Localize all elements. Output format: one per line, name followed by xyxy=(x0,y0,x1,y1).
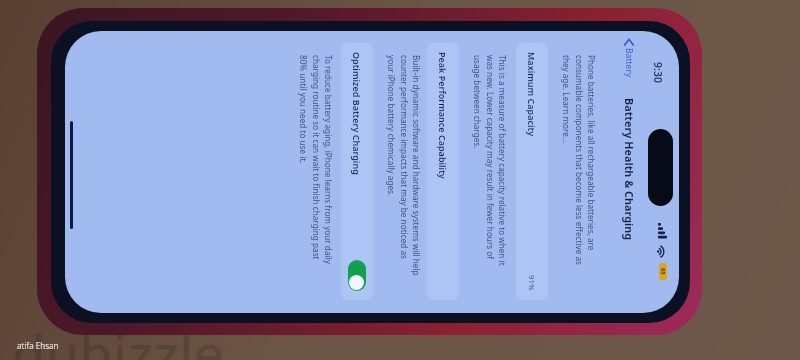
staticText: This is a measure of battery capacity re… xyxy=(472,55,508,277)
staticText: 91% xyxy=(526,275,537,291)
button[interactable]: Maximum Capacity xyxy=(516,43,548,300)
staticText: Optimized Battery Charging xyxy=(351,52,363,175)
button[interactable]: Peak Performance Capability xyxy=(427,43,459,300)
staticText: Battery xyxy=(623,48,635,78)
staticText: Peak Performance Capability xyxy=(437,52,449,179)
staticText: dubizzle xyxy=(12,316,225,360)
staticText: Battery Health & Charging xyxy=(622,98,637,241)
button[interactable]: Optimized Battery Charging xyxy=(341,43,373,300)
staticText: Maximum Capacity xyxy=(526,52,538,137)
button[interactable]: Optimized Battery Charging xyxy=(348,260,366,291)
button[interactable]: Back xyxy=(622,37,636,79)
staticText: Phone batteries, like all rechargeable b… xyxy=(561,55,597,277)
staticText: Built-in dynamic software and hardware s… xyxy=(386,55,422,277)
staticText: 93 xyxy=(659,268,667,275)
staticText: To reduce battery aging, iPhone learns f… xyxy=(298,55,334,277)
staticText: 9:30 xyxy=(651,62,665,83)
staticText: atifa Ehsan xyxy=(17,340,59,351)
other: Back xyxy=(623,38,635,46)
